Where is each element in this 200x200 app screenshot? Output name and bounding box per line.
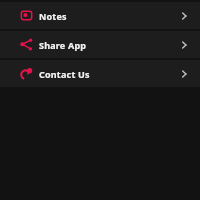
button[interactable]: Contact Us — [0, 60, 200, 87]
staticText: Share App — [39, 39, 87, 51]
button[interactable]: Notes — [0, 2, 200, 29]
staticText: Notes — [39, 10, 67, 22]
other: Share App — [178, 38, 192, 52]
other: Notes — [178, 9, 192, 23]
button[interactable]: Share App — [0, 31, 200, 58]
other: Contact Us — [178, 67, 192, 81]
staticText: Contact Us — [39, 68, 90, 80]
